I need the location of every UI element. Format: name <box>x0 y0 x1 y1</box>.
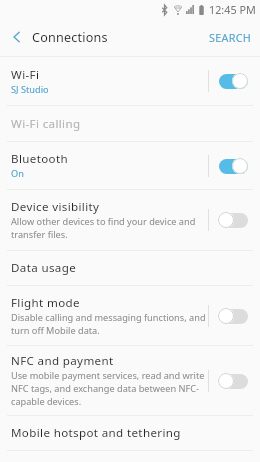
staticText: Bluetooth <box>11 151 68 167</box>
staticText: Connections <box>32 29 108 46</box>
staticText: Use mobile payment services, read and wr… <box>11 369 207 408</box>
staticText: Wi-Fi calling <box>11 116 81 132</box>
staticText: Flight mode <box>11 295 80 311</box>
button[interactable]: SEARCH <box>201 18 260 56</box>
button[interactable]: Turn on <box>219 212 249 228</box>
button[interactable]: Turn off <box>219 73 249 89</box>
button[interactable]: Device visibility <box>0 190 260 250</box>
button[interactable]: NFC and payment <box>0 346 260 415</box>
button[interactable]: Flight mode <box>0 286 260 345</box>
button[interactable]: Turn off <box>219 158 249 174</box>
staticText: SJ Studio <box>11 83 49 96</box>
staticText: Disable calling and messaging functions,… <box>11 311 207 337</box>
staticText: On <box>11 167 24 180</box>
button[interactable]: Bluetooth <box>0 142 260 189</box>
staticText: SEARCH <box>209 30 252 45</box>
button[interactable]: Wi-Fi calling <box>0 106 260 141</box>
button[interactable]: Mobile hotspot and tethering <box>0 416 260 450</box>
staticText: Allow other devices to find your device … <box>11 215 207 241</box>
button[interactable]: Turn on <box>219 373 249 389</box>
staticText: Mobile hotspot and tethering <box>11 425 181 441</box>
button[interactable]: Data usage <box>0 251 260 285</box>
staticText: NFC and payment <box>11 353 114 369</box>
staticText: Device visibility <box>11 199 100 215</box>
button[interactable]: Wi-Fi <box>0 57 260 105</box>
staticText: Data usage <box>11 260 77 276</box>
staticText: Wi-Fi <box>11 67 40 83</box>
staticText: 12:45 PM <box>209 2 256 17</box>
button[interactable]: Turn on <box>219 308 249 324</box>
button[interactable]: Navigate up <box>0 18 32 56</box>
